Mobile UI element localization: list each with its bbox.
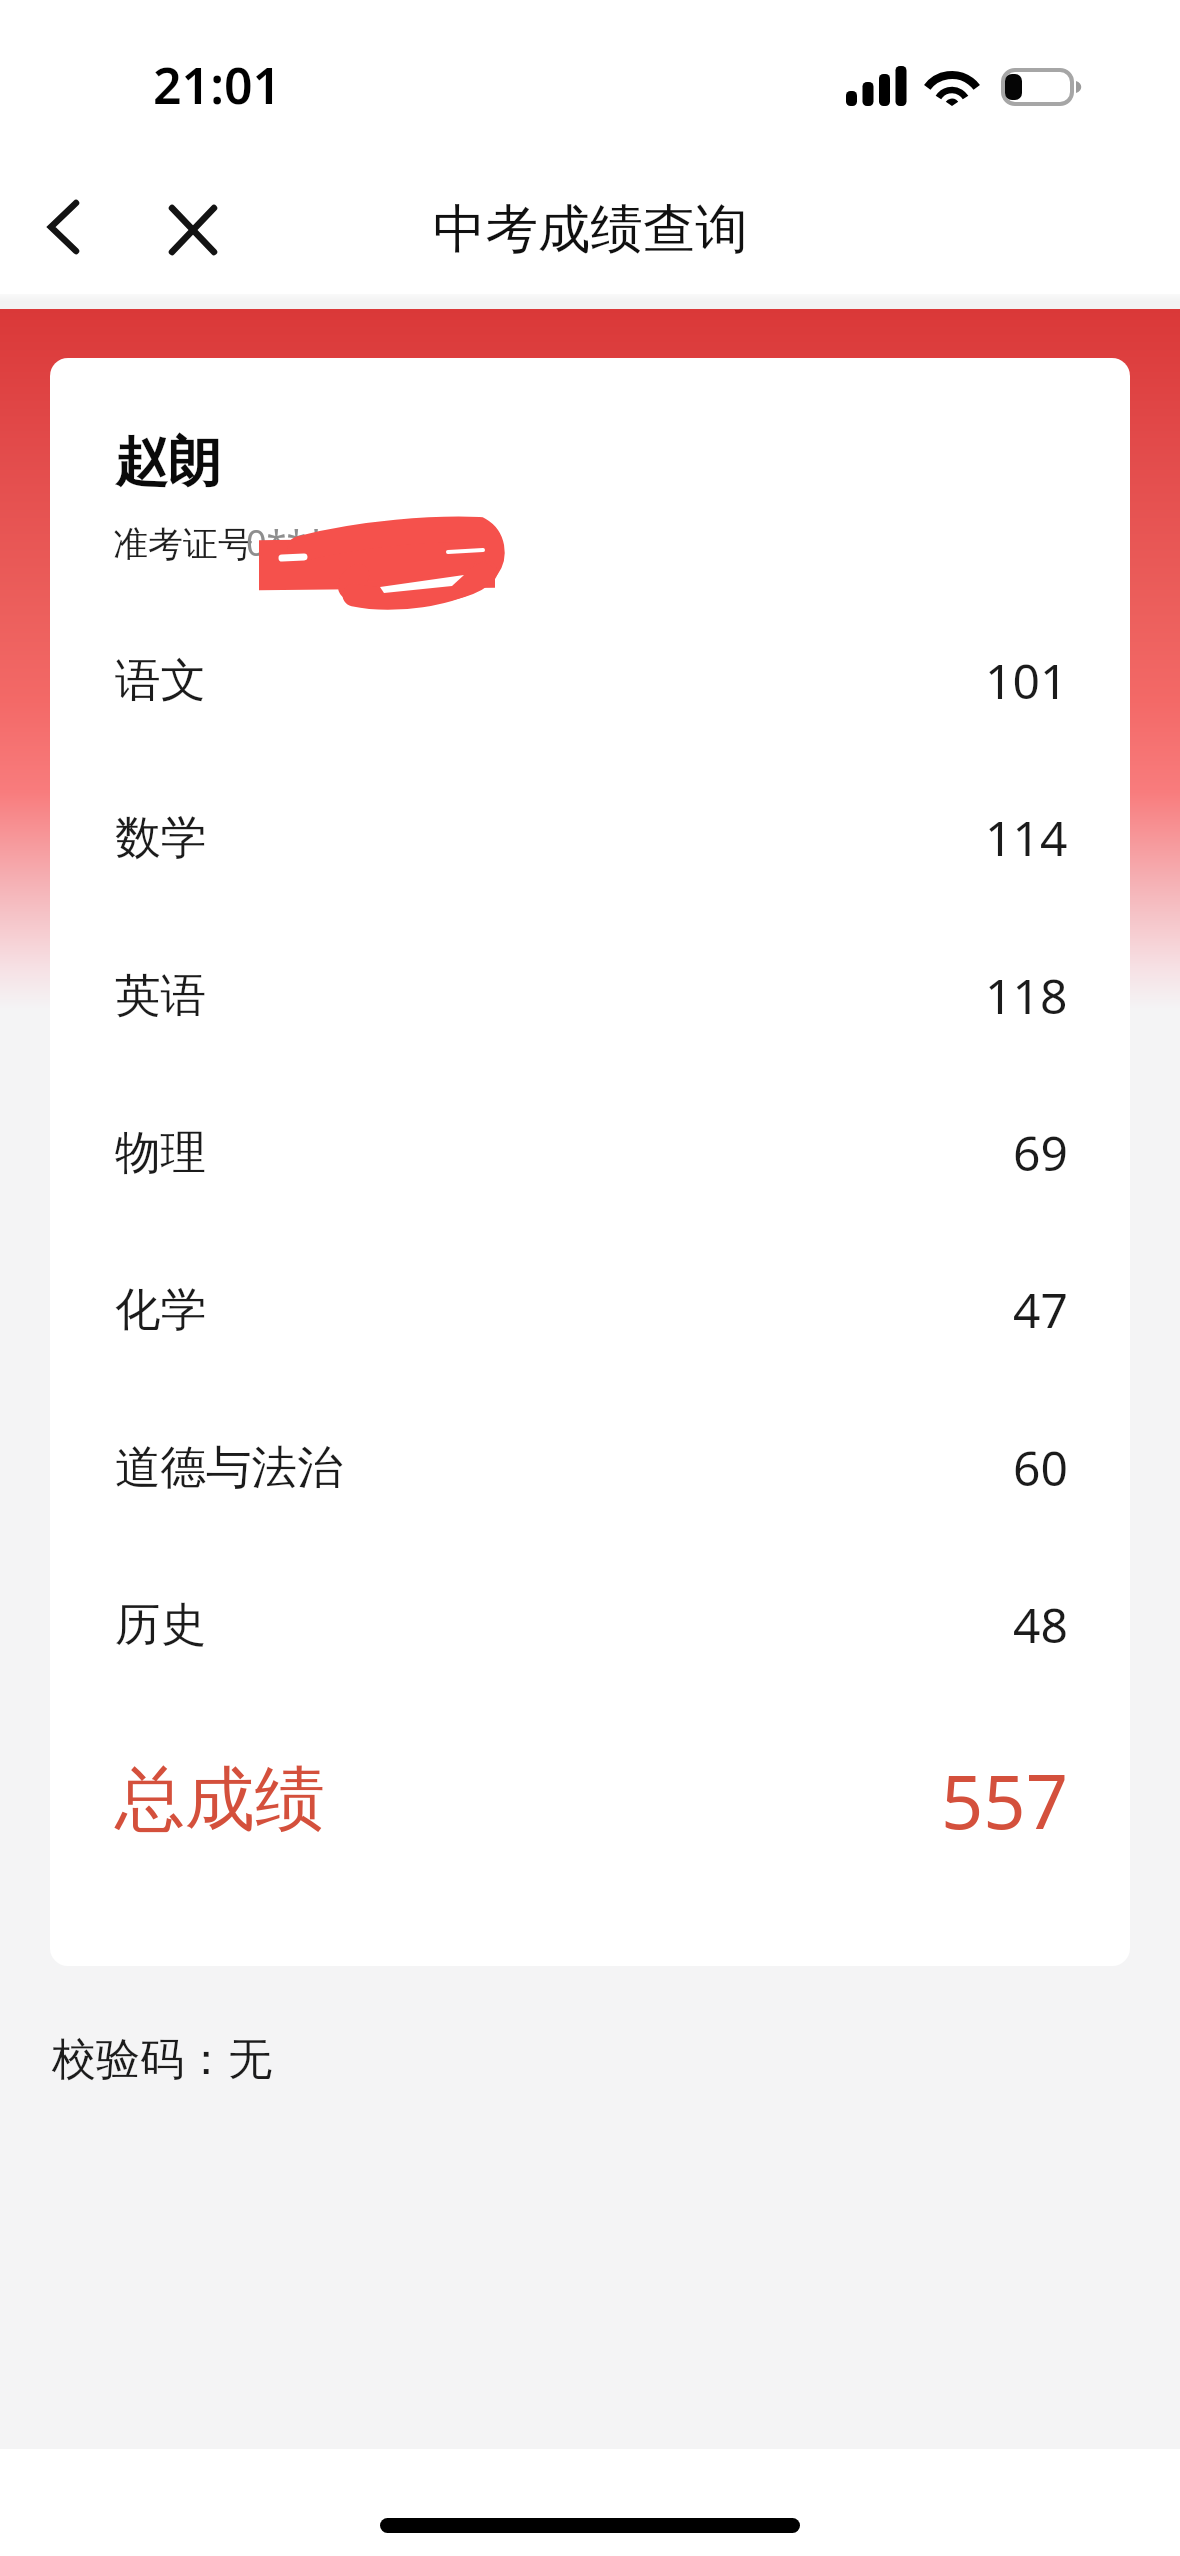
button[interactable]: 数学 — [50, 781, 1130, 893]
staticText: 物理 — [115, 1124, 206, 1181]
staticText: 48 — [1013, 1592, 1068, 1657]
staticText: 118 — [985, 963, 1068, 1028]
staticText: 总成绩 — [115, 1756, 325, 1844]
button[interactable]: 语文 — [50, 624, 1130, 736]
staticText: 数学 — [115, 809, 206, 866]
button[interactable]: Close — [144, 170, 240, 266]
button[interactable]: 英语 — [50, 939, 1130, 1051]
staticText: 化学 — [115, 1281, 206, 1338]
staticText: 21:01 — [153, 51, 282, 119]
staticText: 69 — [1013, 1120, 1068, 1185]
button[interactable]: 化学 — [50, 1253, 1130, 1365]
button[interactable]: Back — [16, 170, 112, 266]
staticText: 中考成绩查询 — [433, 196, 748, 262]
staticText: 语文 — [115, 652, 206, 709]
staticText: 101 — [985, 648, 1068, 713]
button[interactable]: 物理 — [50, 1096, 1130, 1208]
staticText: 英语 — [115, 967, 206, 1024]
staticText: 历史 — [115, 1596, 206, 1653]
staticText: 校验码：无 — [52, 2032, 272, 2087]
staticText: 0********8 — [246, 518, 446, 567]
staticText: 60 — [1013, 1435, 1068, 1500]
staticText: 道德与法治 — [115, 1439, 343, 1496]
button[interactable]: 历史 — [50, 1568, 1130, 1680]
staticText: 557 — [941, 1750, 1068, 1851]
staticText: 47 — [1013, 1277, 1068, 1342]
button[interactable]: 道德与法治 — [50, 1411, 1130, 1523]
staticText: 准考证号 — [113, 522, 253, 566]
staticText: 赵朗 — [115, 429, 221, 496]
button[interactable]: 总成绩 — [50, 1735, 1130, 1865]
staticText: 114 — [985, 805, 1068, 870]
